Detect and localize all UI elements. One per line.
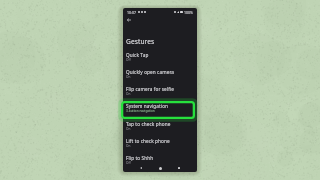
button[interactable]: Quick Tap [123,49,197,66]
staticText: System navigation [126,103,169,109]
staticText: Gestures [126,37,155,46]
staticText: 100% [184,10,193,15]
staticText: Tap to check phone [126,121,171,127]
staticText: On [126,75,131,79]
staticText: Off [126,161,131,165]
button[interactable]: Home [155,163,165,172]
button[interactable]: Recents [174,163,184,172]
button[interactable]: Quickly open camera [123,66,197,83]
staticText: On [126,127,131,131]
button[interactable]: Flip to Shhh [123,152,197,169]
button[interactable]: Back [136,163,146,172]
button[interactable]: Flip camera for selfie [123,83,197,100]
staticText: On [126,92,131,96]
staticText: On [126,144,131,148]
staticText: Quickly open camera [126,69,175,75]
button[interactable]: System navigation [123,100,197,117]
button[interactable]: Lift to check phone [123,135,197,152]
button[interactable]: Tap to check phone [123,118,197,135]
staticText: Quick Tap [126,52,149,58]
staticText: 3-button navigation [126,109,155,113]
staticText: Off [126,58,131,62]
staticText: Flip camera for selfie [126,86,174,92]
staticText: Flip to Shhh [126,155,154,161]
button[interactable]: Back [124,15,133,24]
staticText: Lift to check phone [126,138,170,144]
staticText: 10:07 [127,10,136,15]
